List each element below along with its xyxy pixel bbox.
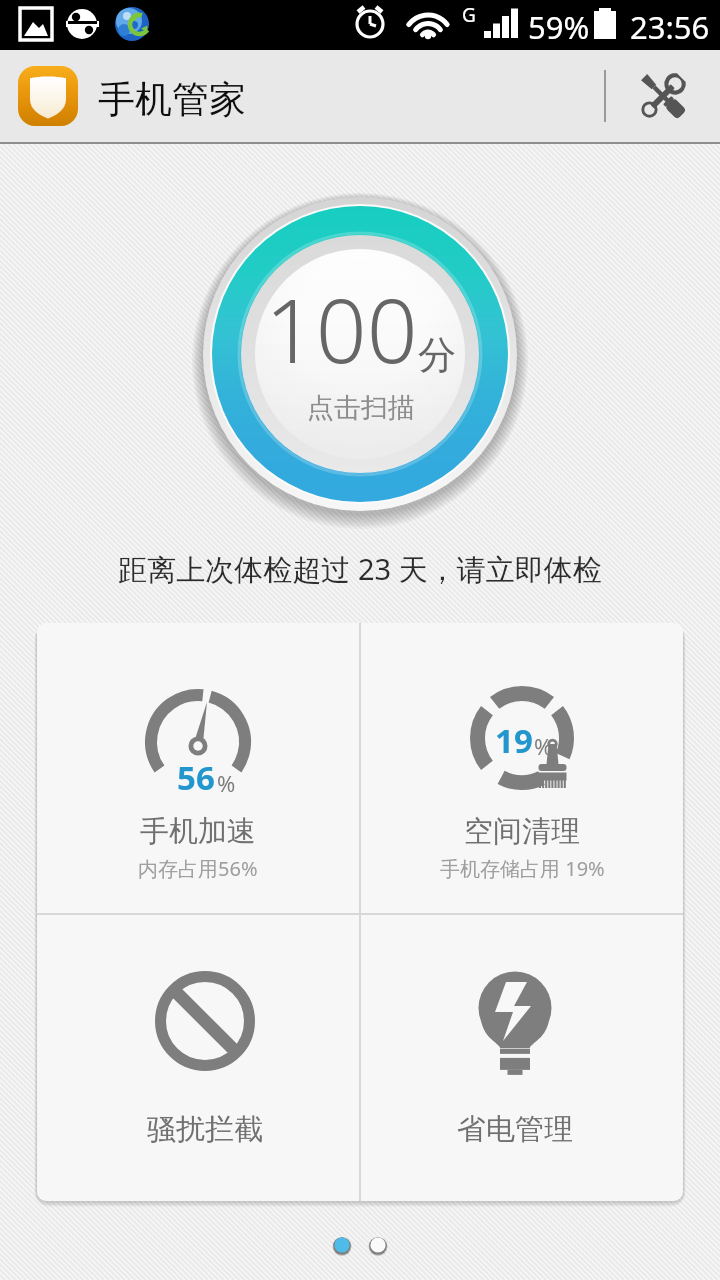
staticText: 手机加速 <box>140 813 256 850</box>
staticText: 分 <box>418 331 456 379</box>
staticText: G <box>462 2 476 28</box>
button[interactable]: Page 2 <box>366 1233 390 1257</box>
staticText: % <box>534 731 553 761</box>
staticText: 距离上次体检超过 23 天，请立即体检 <box>118 549 602 589</box>
button[interactable]: Page 1 <box>330 1233 354 1257</box>
staticText: 手机管家 <box>98 76 246 123</box>
button[interactable]: 省电管理 <box>361 915 683 1201</box>
staticText: 19 <box>495 718 533 763</box>
staticText: 内存占用56% <box>138 855 258 882</box>
staticText: 省电管理 <box>457 1111 573 1148</box>
staticText: 23:56 <box>630 6 710 48</box>
staticText: 空间清理 <box>464 813 580 850</box>
button[interactable]: 56 <box>37 623 359 913</box>
staticText: 100 <box>265 268 418 389</box>
staticText: 59% <box>528 6 590 48</box>
button[interactable]: Tools <box>606 50 720 142</box>
button[interactable]: 骚扰拦截 <box>37 915 359 1201</box>
staticText: 骚扰拦截 <box>147 1111 263 1148</box>
staticText: 56 <box>177 755 215 800</box>
staticText: 手机存储占用 19% <box>440 855 605 882</box>
button[interactable]: 19 <box>361 623 683 913</box>
staticText: 点击扫描 <box>307 391 415 425</box>
staticText: % <box>217 768 236 798</box>
